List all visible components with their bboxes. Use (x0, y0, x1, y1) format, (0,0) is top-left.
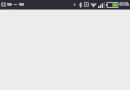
staticText: 46% (119, 1, 129, 8)
